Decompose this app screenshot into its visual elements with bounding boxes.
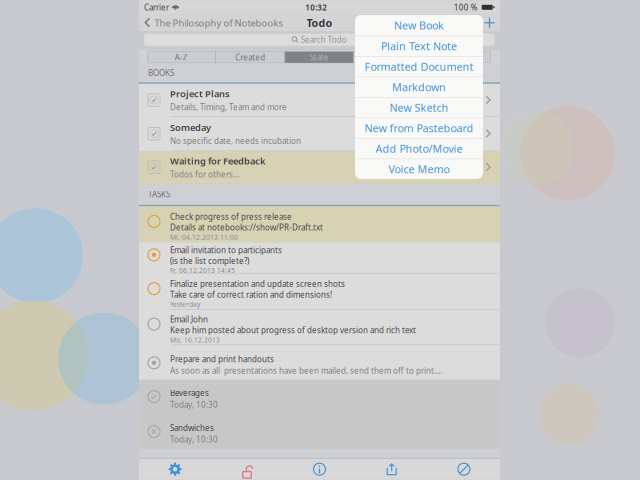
button[interactable]: New from Pasteboard xyxy=(355,117,483,138)
button[interactable]: Markdown xyxy=(355,76,483,97)
staticText: TASKS xyxy=(148,189,170,199)
staticText: Details at notebooks://show/PR-Draft.txt xyxy=(170,222,323,233)
staticText: Search Todo xyxy=(301,34,347,45)
staticText: Carrier xyxy=(144,2,169,13)
staticText: Keep him posted about progress of deskto… xyxy=(170,325,416,335)
button[interactable]: Lock xyxy=(211,459,283,480)
button[interactable]: Waiting for Feedback xyxy=(139,151,500,183)
staticText: (is the list complete?) xyxy=(170,255,249,266)
staticText: Add Photo/Movie xyxy=(375,141,462,156)
button[interactable]: Info xyxy=(283,459,356,480)
button[interactable]: Flag xyxy=(423,51,491,63)
button[interactable]: Created xyxy=(216,51,284,63)
button[interactable]: Sandwiches xyxy=(139,413,500,449)
staticText: Todos for others… xyxy=(170,169,239,180)
button[interactable]: A-Z xyxy=(147,51,215,63)
button[interactable]: Email John xyxy=(139,310,500,345)
staticText: A-Z xyxy=(175,52,188,63)
button[interactable]: State xyxy=(285,51,353,63)
button[interactable]: Add Photo/Movie xyxy=(355,138,483,158)
button[interactable]: Voice Memo xyxy=(355,158,483,179)
staticText: Voice Memo xyxy=(388,162,449,176)
button[interactable]: Finalize presentation and update screen … xyxy=(139,274,500,310)
staticText: As soon as all presentations have been m… xyxy=(170,365,442,376)
button[interactable]: Settings xyxy=(139,459,211,480)
staticText: Plain Text Note xyxy=(381,39,457,53)
button[interactable]: New Book xyxy=(355,15,483,35)
button[interactable]: Plain Text Note xyxy=(355,35,483,56)
staticText: New from Pasteboard xyxy=(364,121,473,135)
staticText: Prepare and print handouts xyxy=(170,354,274,364)
staticText: Email invitation to participants xyxy=(170,245,282,255)
staticText: 100 % xyxy=(454,2,478,13)
button[interactable]: Search Todo xyxy=(139,31,500,50)
staticText: Today, 10:30 xyxy=(170,399,218,410)
button[interactable]: Prepare and print handouts xyxy=(139,345,500,380)
button[interactable]: Email invitation to participants xyxy=(139,242,500,274)
staticText: The Philosophy of Notebooks xyxy=(154,17,282,29)
staticText: Markdown xyxy=(392,80,446,94)
staticText: Take care of correct ration and dimensio… xyxy=(170,289,332,300)
staticText: BOOKS xyxy=(148,67,174,78)
staticText: Fr, 06.12.2013 14:45 xyxy=(170,266,235,275)
staticText: Mi, 04.12.2013 11:00 xyxy=(170,233,238,241)
staticText: Yesterday xyxy=(170,300,200,309)
staticText: 10:32 xyxy=(305,2,327,13)
staticText: Sandwiches xyxy=(170,423,214,433)
staticText: State xyxy=(310,52,329,63)
staticText: No specific date, needs incubation xyxy=(170,136,301,146)
button[interactable]: Someday xyxy=(139,117,500,151)
staticText: Today, 10:30 xyxy=(170,434,218,445)
staticText: Someday xyxy=(170,121,211,134)
staticText: Flag xyxy=(449,52,464,63)
staticText: Email John xyxy=(170,314,208,325)
staticText: Beverages xyxy=(170,388,209,398)
staticText: Finalize presentation and update screen … xyxy=(170,279,345,289)
button[interactable]: New Sketch xyxy=(355,97,483,117)
staticText: Details, Timing, Team and more xyxy=(170,102,287,112)
staticText: Formatted Document xyxy=(364,59,473,74)
button[interactable]: Due xyxy=(354,51,422,63)
button[interactable]: Check progress of press release xyxy=(139,206,500,242)
staticText: New Sketch xyxy=(389,100,448,115)
button[interactable]: Beverages xyxy=(139,380,500,413)
staticText: Created xyxy=(235,52,265,63)
button[interactable]: Project Plans xyxy=(139,84,500,117)
button[interactable]: Add xyxy=(479,14,500,31)
staticText: New Book xyxy=(394,18,444,32)
staticText: Todo xyxy=(306,16,332,30)
staticText: Mo, 16.12.2013 xyxy=(170,335,220,344)
button[interactable]: Formatted Document xyxy=(355,56,483,76)
button[interactable]: The Philosophy of Notebooks xyxy=(139,14,288,31)
button[interactable]: Compose xyxy=(428,459,500,480)
staticText: Check progress of press release xyxy=(170,211,292,222)
button[interactable]: Share xyxy=(356,459,428,480)
staticText: Waiting for Feedback xyxy=(170,155,265,167)
staticText: Project Plans xyxy=(170,87,230,100)
staticText: Due xyxy=(380,52,396,63)
